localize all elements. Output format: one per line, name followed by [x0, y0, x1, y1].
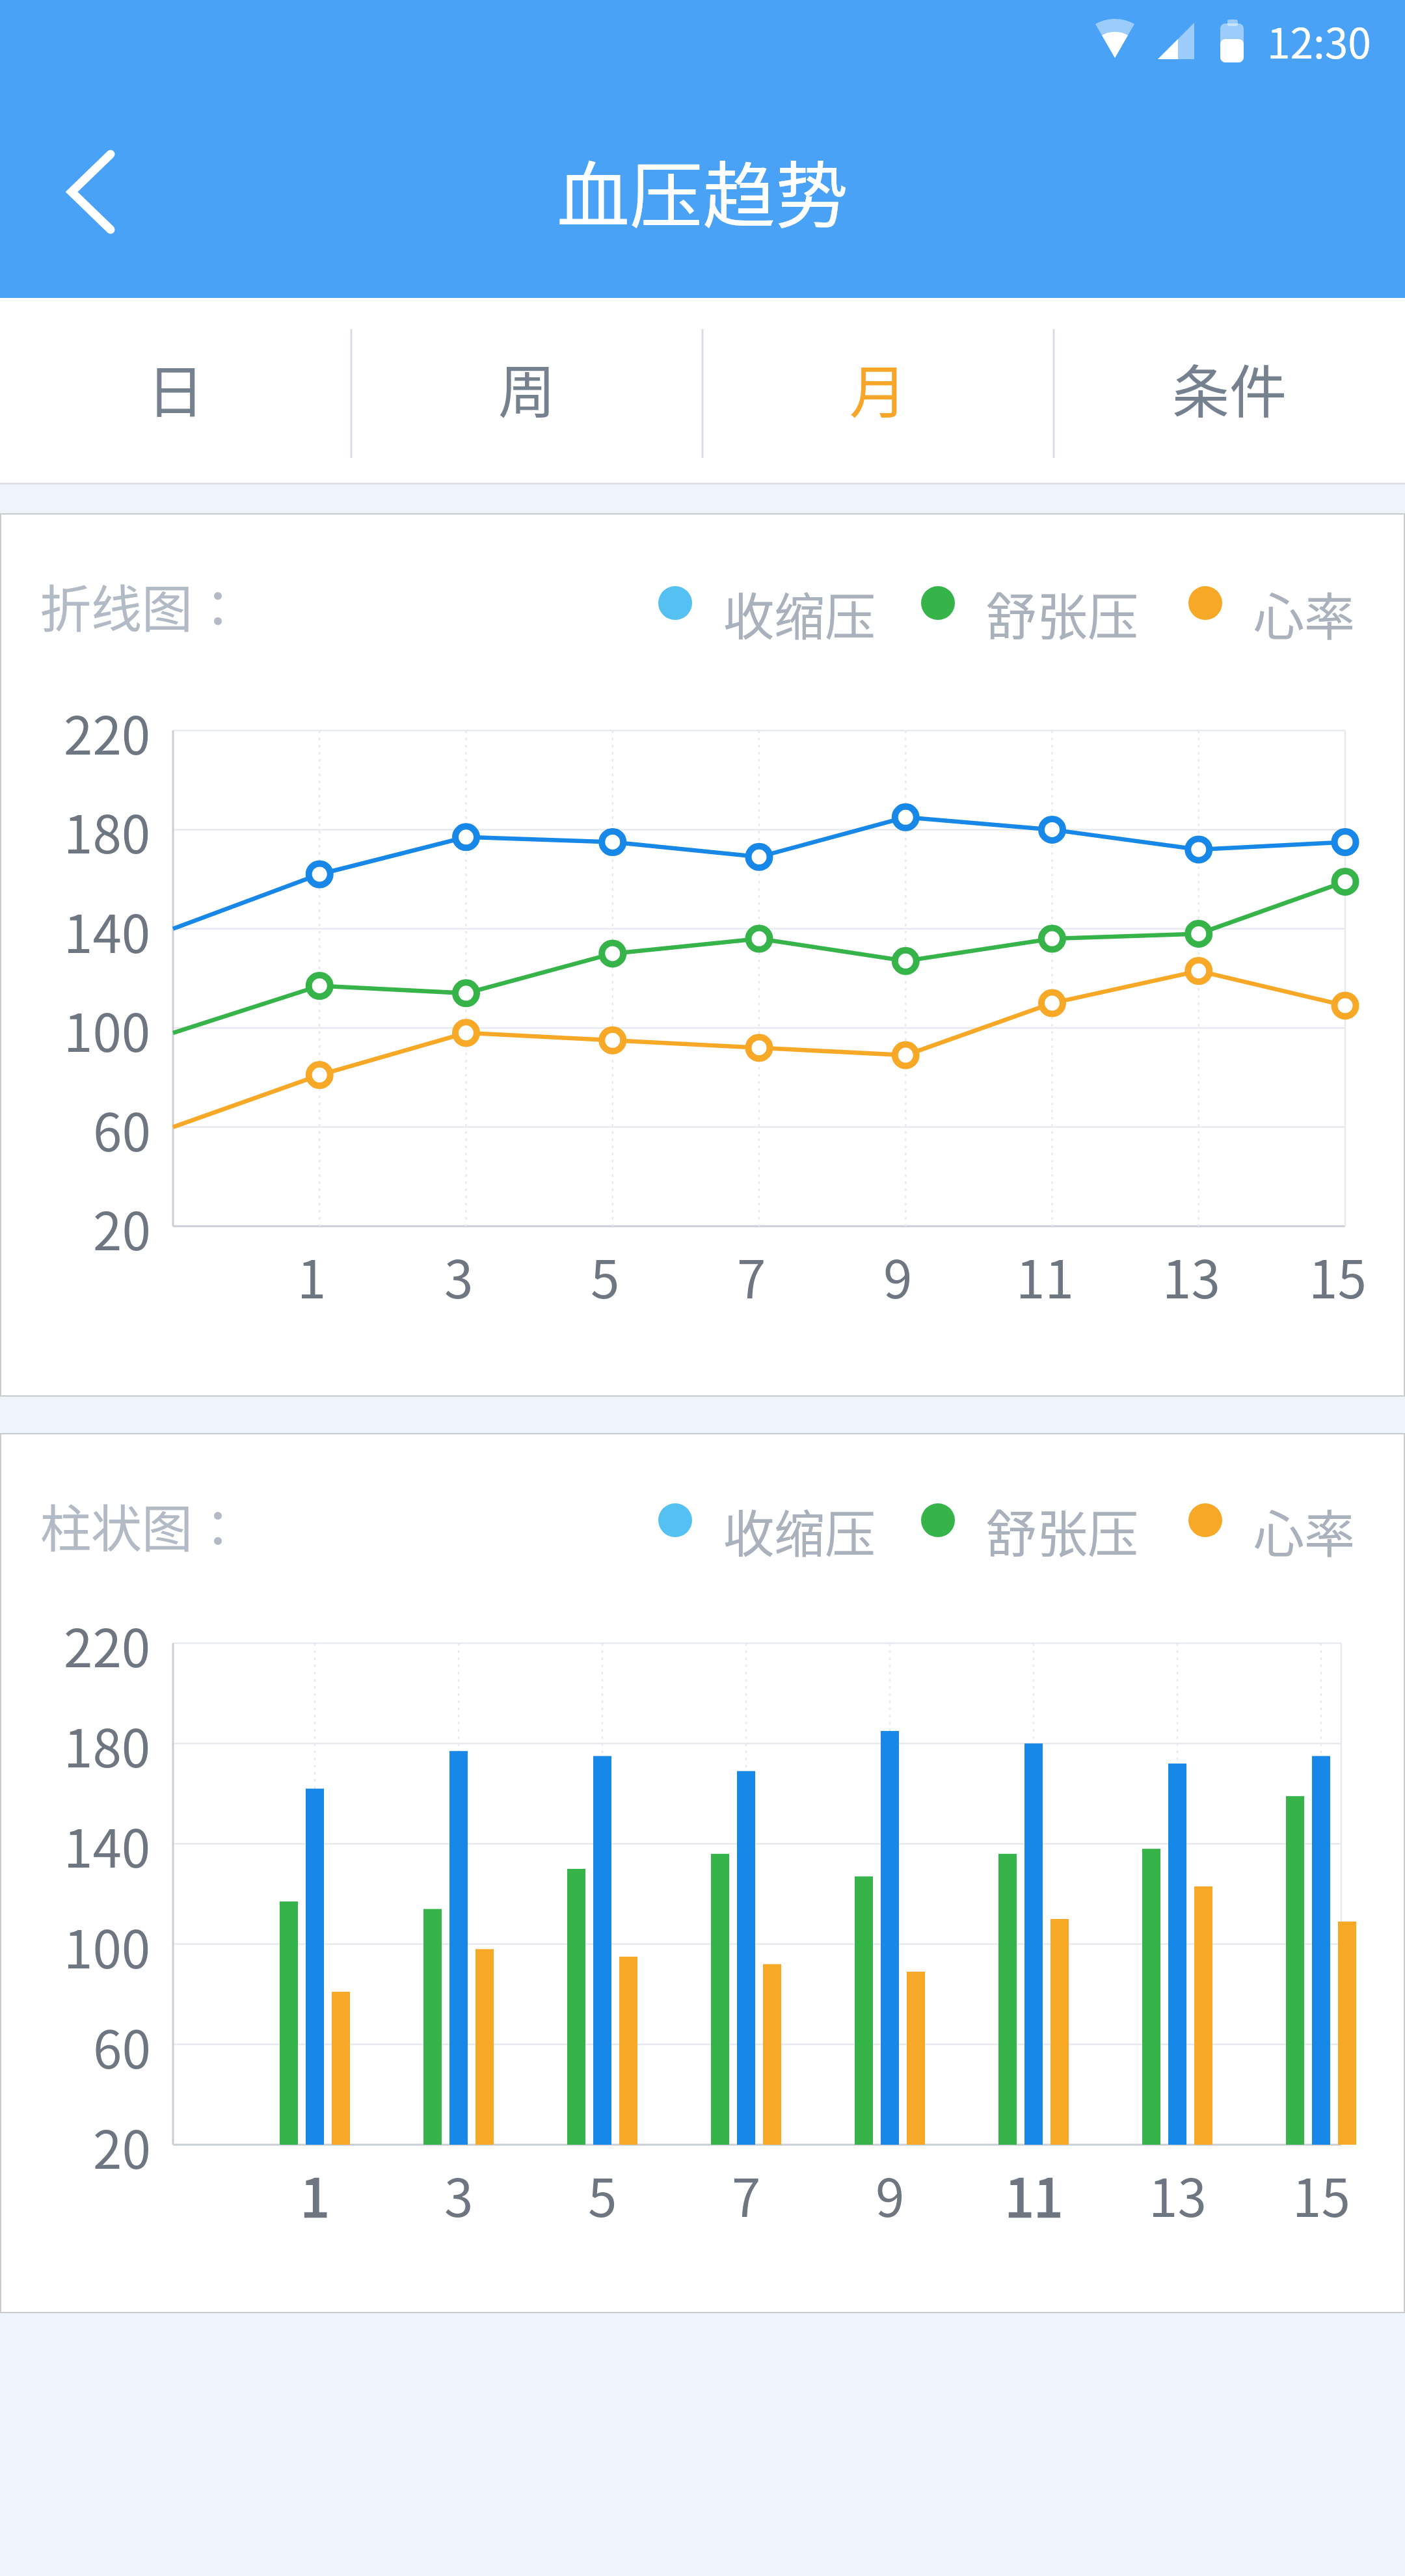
staticText: 血压趋势 — [557, 138, 848, 243]
button[interactable]: 周 — [351, 298, 702, 485]
button[interactable]: 日 — [0, 298, 351, 485]
staticText: 100 — [64, 1908, 151, 1983]
staticText: 180 — [64, 1707, 151, 1782]
button[interactable] — [33, 130, 150, 254]
button[interactable]: 舒张压 — [921, 570, 1146, 651]
staticText: 1 — [297, 1238, 327, 1313]
staticText: 周 — [498, 346, 556, 429]
staticText: 3 — [444, 1238, 474, 1313]
staticText: 140 — [64, 892, 151, 968]
staticText: 5 — [591, 1238, 620, 1313]
staticText: 心率 — [1253, 577, 1356, 651]
staticText: 舒张压 — [986, 1494, 1139, 1568]
button[interactable]: 心率 — [1188, 1488, 1360, 1568]
staticText: 100 — [64, 991, 151, 1067]
staticText: 日 — [147, 346, 205, 429]
staticText: 7 — [737, 1238, 766, 1313]
staticText: 220 — [64, 1607, 151, 1682]
staticText: 12:30 — [1267, 10, 1371, 71]
staticText: 60 — [93, 1091, 151, 1166]
staticText: 15 — [1309, 1238, 1367, 1313]
staticText: 9 — [876, 2156, 905, 2232]
staticText: 15 — [1292, 2156, 1350, 2232]
staticText: 13 — [1149, 2156, 1207, 2232]
staticText: 条件 — [1172, 346, 1287, 429]
staticText: 收缩压 — [723, 577, 876, 651]
staticText: 心率 — [1253, 1494, 1356, 1568]
staticText: 1 — [301, 2156, 330, 2232]
staticText: 180 — [64, 793, 151, 868]
button[interactable]: 舒张压 — [921, 1488, 1146, 1568]
staticText: 220 — [64, 694, 151, 770]
button[interactable]: 月 — [702, 298, 1054, 485]
button[interactable]: 心率 — [1188, 570, 1360, 651]
staticText: 5 — [588, 2156, 617, 2232]
staticText: 20 — [93, 2108, 151, 2184]
staticText: 140 — [64, 1807, 151, 1883]
staticText: 7 — [732, 2156, 761, 2232]
staticText: 折线图： — [40, 569, 244, 643]
staticText: 13 — [1162, 1238, 1220, 1313]
staticText: 3 — [444, 2156, 474, 2232]
staticText: 柱状图： — [40, 1489, 244, 1563]
staticText: 11 — [1016, 1238, 1074, 1313]
staticText: 舒张压 — [986, 577, 1139, 651]
staticText: 20 — [93, 1190, 151, 1265]
staticText: 11 — [1005, 2156, 1063, 2232]
button[interactable]: 收缩压 — [658, 1488, 883, 1568]
staticText: 9 — [883, 1238, 913, 1313]
button[interactable]: 收缩压 — [658, 570, 883, 651]
staticText: 60 — [93, 2008, 151, 2084]
button[interactable]: 条件 — [1054, 298, 1405, 485]
staticText: 月 — [850, 346, 907, 429]
staticText: 收缩压 — [723, 1494, 876, 1568]
